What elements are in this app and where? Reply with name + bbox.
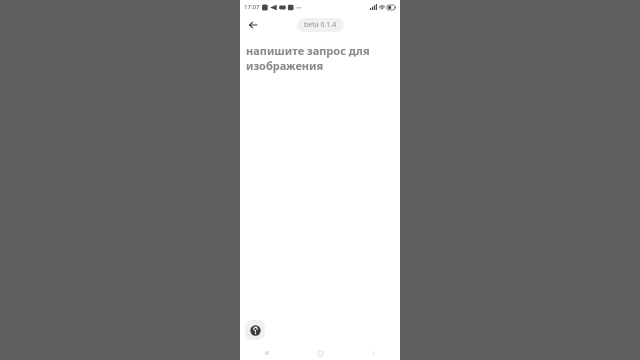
button[interactable]: Recents (240, 346, 294, 360)
button[interactable]: Help (245, 320, 265, 340)
button[interactable]: Back (244, 16, 262, 34)
staticText: напишите запрос для изображения (246, 43, 388, 73)
staticText: beta 0.1.4 (304, 20, 337, 30)
button[interactable]: Home (294, 346, 347, 360)
button[interactable]: beta 0.1.4 (297, 18, 344, 32)
staticText: 17:07 (244, 3, 260, 11)
